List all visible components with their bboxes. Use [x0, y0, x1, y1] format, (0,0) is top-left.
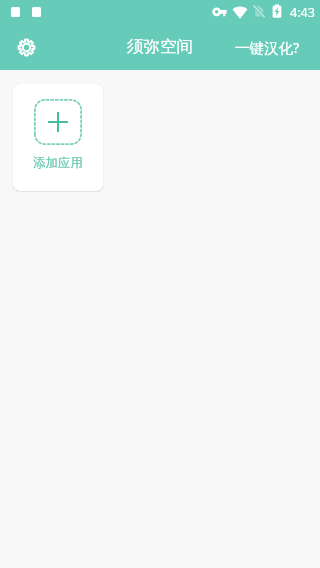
staticText: 添加应用	[33, 155, 83, 171]
button[interactable]: Settings	[9, 30, 43, 64]
staticText: 一键汉化?	[235, 37, 300, 57]
button[interactable]: 添加应用	[13, 84, 103, 191]
button[interactable]: 一键汉化?	[223, 29, 320, 65]
staticText: 4:43	[290, 4, 315, 21]
staticText: 须弥空间	[127, 36, 193, 57]
